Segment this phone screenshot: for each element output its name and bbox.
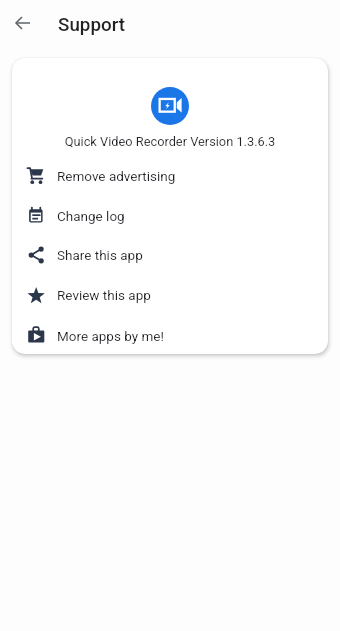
staticText: Review this app [57, 287, 151, 303]
staticText: Remove advertising [57, 168, 176, 184]
staticText: Share this app [57, 247, 143, 263]
staticText: Support [58, 14, 125, 36]
button[interactable]: Change log [12, 196, 328, 236]
staticText: Quick Video Recorder Version 1.3.6.3 [12, 134, 328, 149]
button[interactable]: Back [8, 8, 38, 38]
button[interactable]: More apps by me! [12, 316, 328, 354]
button[interactable]: Review this app [12, 275, 328, 315]
staticText: Change log [57, 208, 125, 224]
button[interactable]: Share this app [12, 235, 328, 275]
staticText: More apps by me! [57, 328, 164, 344]
button[interactable]: Remove advertising [12, 156, 328, 196]
